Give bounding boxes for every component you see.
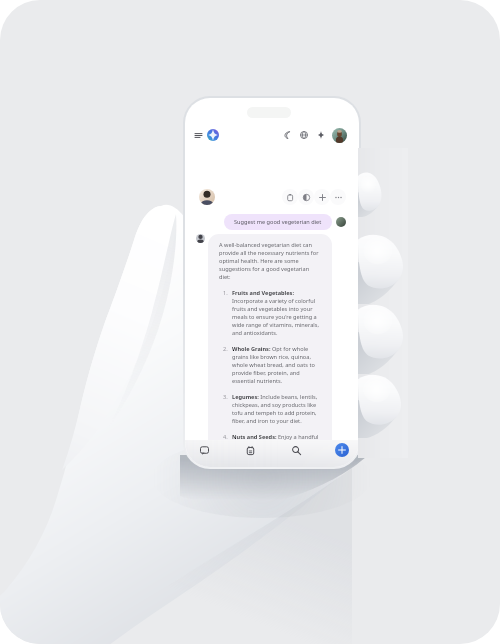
button[interactable]: Language	[300, 131, 308, 139]
button[interactable]: Contrast	[298, 189, 314, 205]
button[interactable]: Add	[314, 189, 330, 205]
staticText: 2.	[223, 345, 228, 353]
button[interactable]: Chats	[197, 443, 211, 457]
staticText: 3.	[223, 393, 228, 401]
button[interactable]: Suggest me good vegeterian diet	[224, 214, 332, 230]
staticText: Nuts and Seeds: Enjoy a handful of nuts …	[232, 433, 320, 457]
staticText: 4.	[223, 433, 228, 441]
staticText: Legumes: Include beans, lentils, chickpe…	[232, 393, 320, 425]
button[interactable]: More	[330, 189, 346, 205]
staticText: Fruits and Vegetables: Incorporate a var…	[232, 289, 320, 337]
button[interactable]: Assistant	[207, 129, 219, 141]
staticText: 1.	[223, 289, 228, 297]
button[interactable]: New chat	[335, 443, 349, 457]
button[interactable]: Copy	[282, 189, 298, 205]
button[interactable]: Dark mode	[283, 131, 291, 139]
staticText: Whole Grains: Opt for whole grains like …	[232, 345, 320, 385]
button[interactable]: Profile	[332, 128, 347, 143]
button[interactable]: Search	[289, 443, 303, 457]
staticText: Suggest me good vegeterian diet	[234, 218, 322, 226]
button[interactable]: Magic	[317, 131, 325, 139]
button[interactable]: Notes	[243, 443, 257, 457]
button[interactable]: Menu	[195, 133, 202, 138]
staticText: A well-balanced vegetarian diet can prov…	[219, 241, 321, 281]
